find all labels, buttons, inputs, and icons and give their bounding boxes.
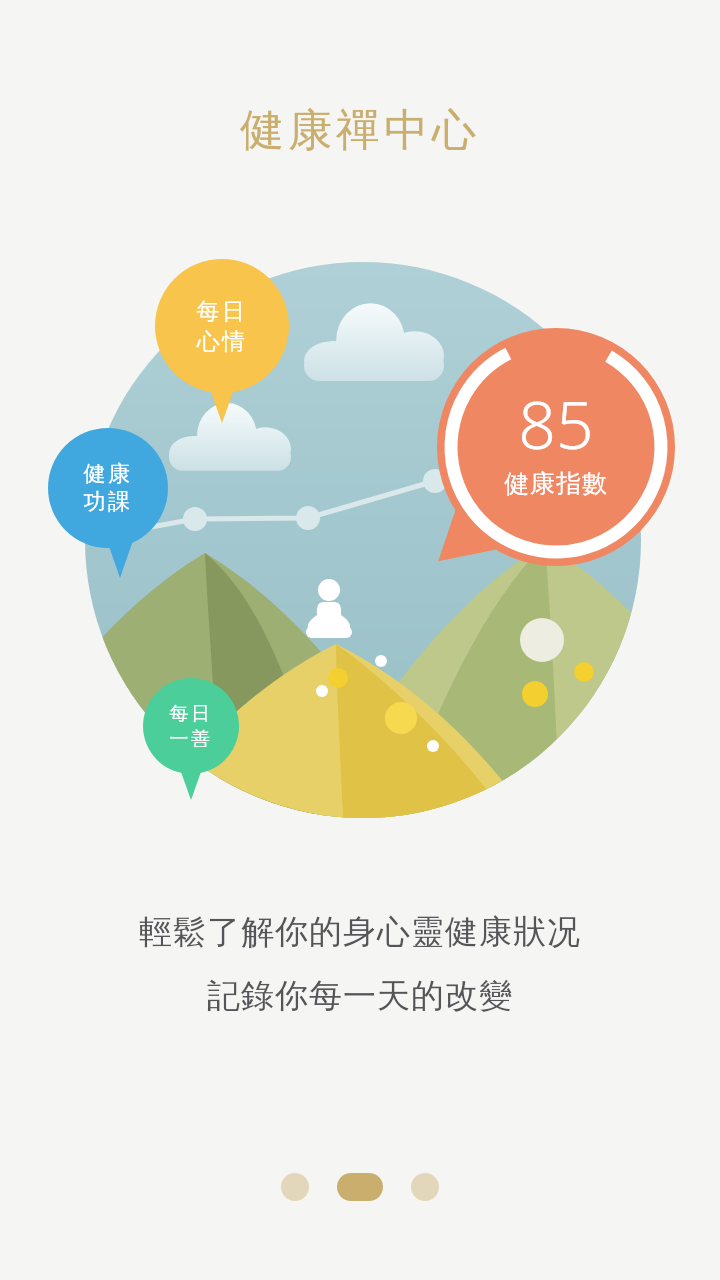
staticText: 記錄你每一天的改變: [0, 975, 720, 1017]
staticText: 85: [437, 378, 675, 468]
staticText: 健康 功課: [23, 460, 193, 516]
button[interactable]: 每日心情: [137, 297, 307, 356]
button[interactable]: 健康指數 85: [437, 328, 675, 566]
button[interactable]: 每日一善: [106, 702, 276, 751]
staticText: 每日 一善: [106, 702, 276, 751]
button[interactable]: 健康功課: [23, 460, 193, 516]
staticText: 每日 心情: [137, 297, 307, 356]
staticText: 健康指數: [437, 468, 675, 499]
button[interactable]: Page 3: [411, 1173, 439, 1201]
button[interactable]: Page 2, current: [337, 1173, 383, 1201]
staticText: 健康禪中心: [0, 103, 720, 158]
staticText: 輕鬆了解你的身心靈健康狀况: [0, 911, 720, 953]
button[interactable]: Page 1: [281, 1173, 309, 1201]
